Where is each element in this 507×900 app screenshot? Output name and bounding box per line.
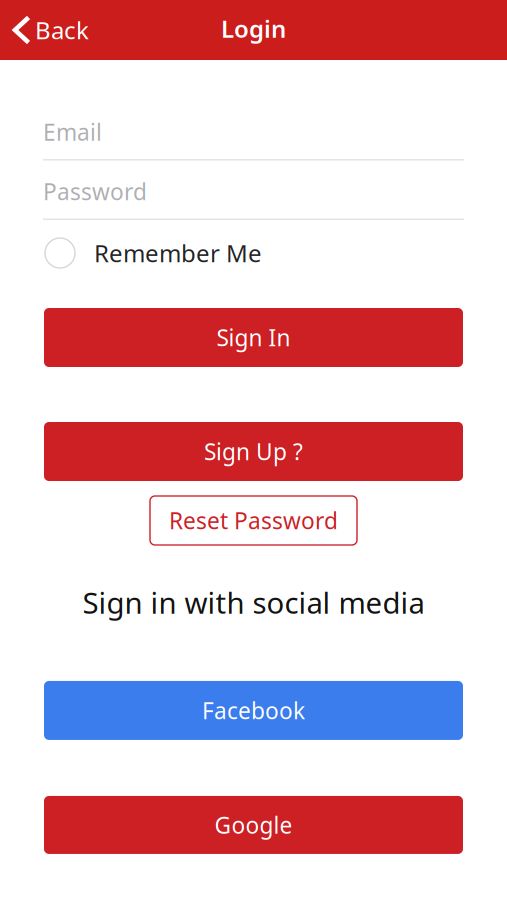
staticText: Remember Me (94, 237, 262, 269)
staticText: Back (35, 14, 89, 46)
button[interactable]: Sign Up ? (44, 422, 463, 481)
staticText: Login (221, 13, 286, 44)
button[interactable]: Remember Me (0, 237, 507, 269)
button[interactable]: Back (0, 8, 99, 52)
staticText: Sign in with social media (82, 583, 424, 622)
staticText: Reset Password (169, 505, 338, 535)
staticText: Sign Up ? (204, 436, 303, 466)
button[interactable]: Facebook (44, 681, 463, 740)
staticText: Google (214, 810, 292, 840)
staticText: Facebook (202, 695, 305, 725)
button[interactable]: Sign In (44, 308, 463, 367)
staticText: Sign In (216, 322, 290, 352)
button[interactable]: Reset Password (150, 496, 357, 545)
button[interactable]: Google (44, 796, 463, 854)
staticText: Email (43, 117, 102, 147)
staticText: Password (43, 176, 147, 207)
